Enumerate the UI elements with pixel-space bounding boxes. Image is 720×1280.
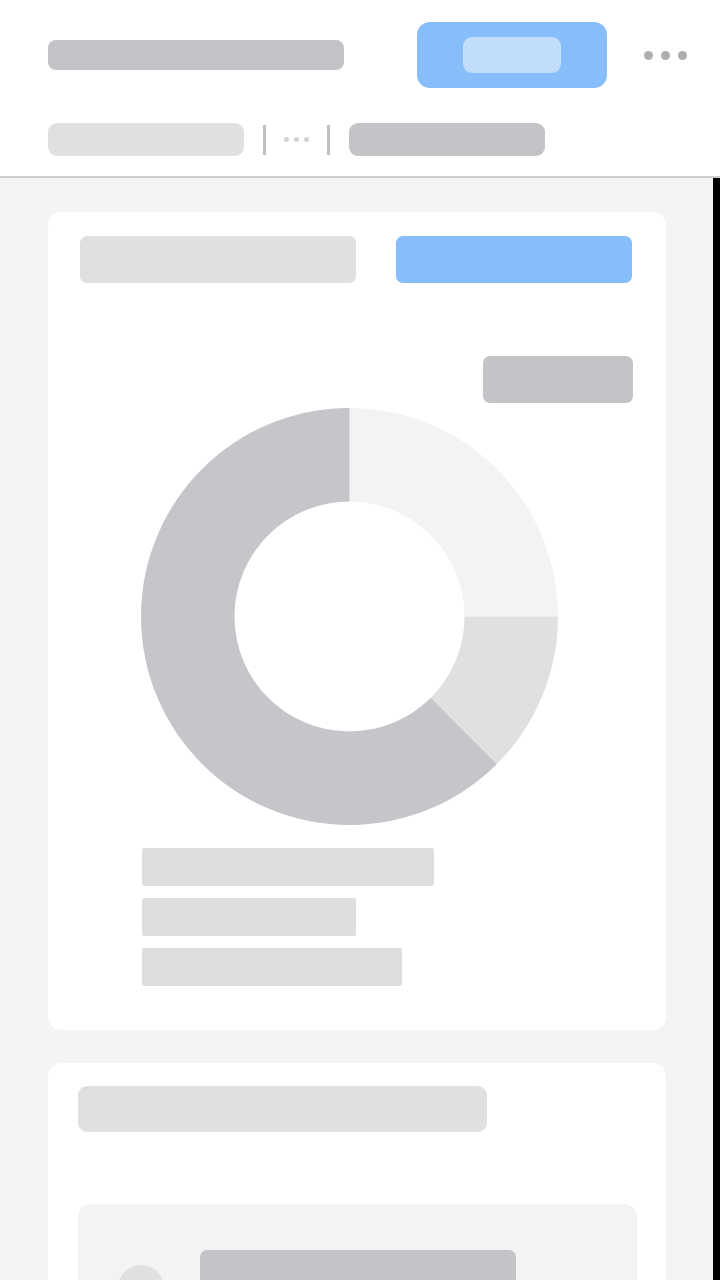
button[interactable] [396, 236, 632, 283]
button[interactable]: More options [634, 34, 696, 76]
button[interactable] [48, 40, 344, 70]
button[interactable] [349, 123, 545, 156]
button[interactable] [48, 123, 244, 156]
button[interactable] [417, 22, 607, 88]
other: Chart placeholder [141, 408, 558, 825]
button[interactable] [78, 1204, 637, 1280]
button[interactable] [483, 356, 633, 403]
